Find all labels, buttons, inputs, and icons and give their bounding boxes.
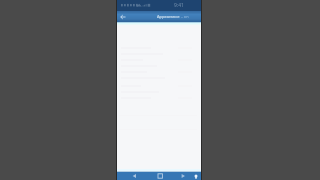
button[interactable]: Recent apps bbox=[182, 172, 191, 180]
staticText: – on bbox=[180, 14, 189, 19]
staticText: Appearance bbox=[157, 14, 180, 19]
button[interactable]: Hide keyboard bbox=[197, 172, 202, 180]
button[interactable]: Navigate up bbox=[117, 11, 128, 22]
button[interactable]: Back bbox=[130, 172, 139, 180]
staticText: 9:41 bbox=[174, 2, 184, 9]
button[interactable]: Home bbox=[156, 172, 165, 180]
